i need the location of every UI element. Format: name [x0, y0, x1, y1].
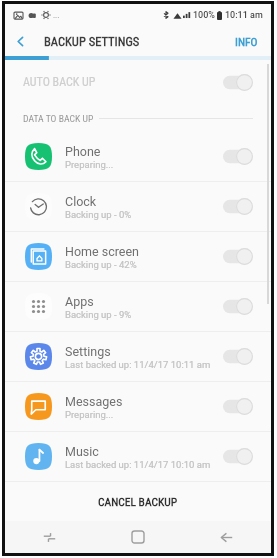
staticText: Last backed up: 11/4/17 10:10 am	[65, 459, 211, 470]
staticText: Backing up - 0%	[65, 209, 132, 220]
staticText: Last backed up: 11/4/17 10:11 am	[65, 359, 211, 370]
button[interactable]: Back	[182, 521, 271, 553]
staticText: Phone	[65, 144, 101, 159]
button[interactable]: Apps	[5, 282, 271, 331]
button[interactable]: AUTO BACK UP	[5, 60, 271, 104]
button[interactable]: Clock	[5, 182, 271, 231]
staticText: Clock	[65, 194, 97, 209]
staticText: BACKUP SETTINGS	[44, 34, 140, 49]
button[interactable]: Home	[93, 521, 182, 553]
button[interactable]: Music	[5, 432, 271, 481]
staticText: Apps	[65, 294, 94, 309]
staticText: Backing up - 42%	[65, 259, 137, 270]
staticText: Preparing...	[65, 159, 114, 170]
staticText: CANCEL BACKUP	[98, 495, 178, 508]
button[interactable]: INFO	[222, 26, 271, 56]
staticText: AUTO BACK UP	[23, 75, 96, 89]
staticText: Music	[65, 444, 99, 459]
staticText: Preparing...	[65, 409, 114, 420]
staticText: 100%	[193, 10, 215, 21]
staticText: 10:11 am	[225, 10, 263, 21]
button[interactable]: Settings	[5, 332, 271, 381]
staticText: Backing up - 9%	[65, 309, 132, 320]
staticText: INFO	[235, 35, 258, 48]
button[interactable]: Navigate up	[5, 26, 35, 56]
button[interactable]: Recent apps	[5, 521, 93, 553]
staticText: DATA TO BACK UP	[23, 113, 94, 124]
button[interactable]: CANCEL BACKUP	[5, 482, 271, 521]
staticText: Settings	[65, 344, 111, 359]
staticText: Messages	[65, 394, 123, 409]
button[interactable]: Messages	[5, 382, 271, 431]
staticText: Home screen	[65, 244, 140, 259]
button[interactable]: Home screen	[5, 232, 271, 281]
button[interactable]: Phone	[5, 132, 271, 181]
staticText: ...	[53, 11, 60, 20]
